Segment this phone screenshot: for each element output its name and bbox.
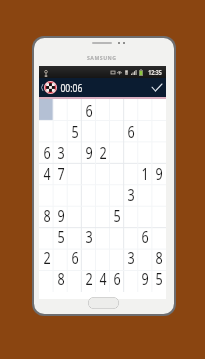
- button[interactable]: [110, 183, 124, 204]
- button[interactable]: 8: [39, 204, 54, 225]
- staticText: 4: [43, 162, 51, 183]
- button[interactable]: 9: [138, 267, 152, 288]
- button[interactable]: [110, 225, 124, 246]
- button[interactable]: Confirm: [150, 78, 164, 97]
- button[interactable]: [54, 120, 68, 141]
- button[interactable]: 5: [152, 267, 166, 288]
- button[interactable]: 6: [138, 225, 152, 246]
- button[interactable]: 9: [54, 204, 68, 225]
- button[interactable]: 5: [110, 204, 124, 225]
- button[interactable]: [96, 246, 110, 267]
- button[interactable]: [39, 99, 54, 120]
- button[interactable]: [152, 225, 166, 246]
- button[interactable]: [124, 267, 138, 288]
- staticText: 3: [127, 246, 135, 267]
- button[interactable]: [82, 246, 96, 267]
- button[interactable]: [96, 204, 110, 225]
- button[interactable]: [39, 120, 54, 141]
- button[interactable]: 3: [82, 225, 96, 246]
- button[interactable]: 9: [82, 141, 96, 162]
- staticText: 4: [99, 267, 107, 288]
- button[interactable]: 3: [124, 246, 138, 267]
- staticText: 3: [85, 225, 93, 246]
- button[interactable]: Home: [88, 297, 119, 309]
- button[interactable]: 6: [110, 267, 124, 288]
- button[interactable]: 3: [124, 183, 138, 204]
- button[interactable]: [124, 204, 138, 225]
- button[interactable]: 6: [124, 120, 138, 141]
- button[interactable]: [96, 99, 110, 120]
- staticText: 00:06: [60, 81, 82, 95]
- staticText: 9: [141, 267, 149, 288]
- staticText: 8: [155, 246, 163, 267]
- button[interactable]: [68, 183, 82, 204]
- button[interactable]: [124, 225, 138, 246]
- button[interactable]: 2: [82, 267, 96, 288]
- staticText: 6: [71, 246, 79, 267]
- button[interactable]: [110, 141, 124, 162]
- button[interactable]: [68, 267, 82, 288]
- button[interactable]: 5: [54, 225, 68, 246]
- button[interactable]: [68, 225, 82, 246]
- staticText: 5: [113, 204, 121, 225]
- button[interactable]: [138, 120, 152, 141]
- button[interactable]: 8: [54, 267, 68, 288]
- staticText: 6: [127, 120, 135, 141]
- button[interactable]: [68, 99, 82, 120]
- staticText: 12:35: [148, 68, 162, 76]
- button[interactable]: [110, 99, 124, 120]
- button[interactable]: 1: [138, 162, 152, 183]
- button[interactable]: 6: [39, 141, 54, 162]
- staticText: 8: [57, 267, 65, 288]
- button[interactable]: [110, 162, 124, 183]
- button[interactable]: 9: [152, 162, 166, 183]
- button[interactable]: [96, 162, 110, 183]
- button[interactable]: 3: [54, 141, 68, 162]
- button[interactable]: [68, 204, 82, 225]
- button[interactable]: 6: [82, 99, 96, 120]
- staticText: 3: [57, 141, 65, 162]
- button[interactable]: 4: [39, 162, 54, 183]
- button[interactable]: 4: [96, 267, 110, 288]
- button[interactable]: [82, 204, 96, 225]
- staticText: 5: [57, 225, 65, 246]
- button[interactable]: [96, 225, 110, 246]
- staticText: 8: [43, 204, 51, 225]
- button[interactable]: [39, 267, 54, 288]
- button[interactable]: [96, 120, 110, 141]
- button[interactable]: [68, 141, 82, 162]
- button[interactable]: 7: [54, 162, 68, 183]
- button[interactable]: [82, 162, 96, 183]
- button[interactable]: 5: [68, 120, 82, 141]
- button[interactable]: [124, 162, 138, 183]
- button[interactable]: [82, 120, 96, 141]
- button[interactable]: 8: [152, 246, 166, 267]
- button[interactable]: 2: [39, 246, 54, 267]
- button[interactable]: [96, 183, 110, 204]
- button[interactable]: [82, 183, 96, 204]
- staticText: 5: [71, 120, 79, 141]
- button[interactable]: 2: [96, 141, 110, 162]
- button[interactable]: [110, 246, 124, 267]
- button[interactable]: [39, 225, 54, 246]
- button[interactable]: [68, 162, 82, 183]
- staticText: 2: [43, 246, 51, 267]
- button[interactable]: [110, 120, 124, 141]
- button[interactable]: 6: [68, 246, 82, 267]
